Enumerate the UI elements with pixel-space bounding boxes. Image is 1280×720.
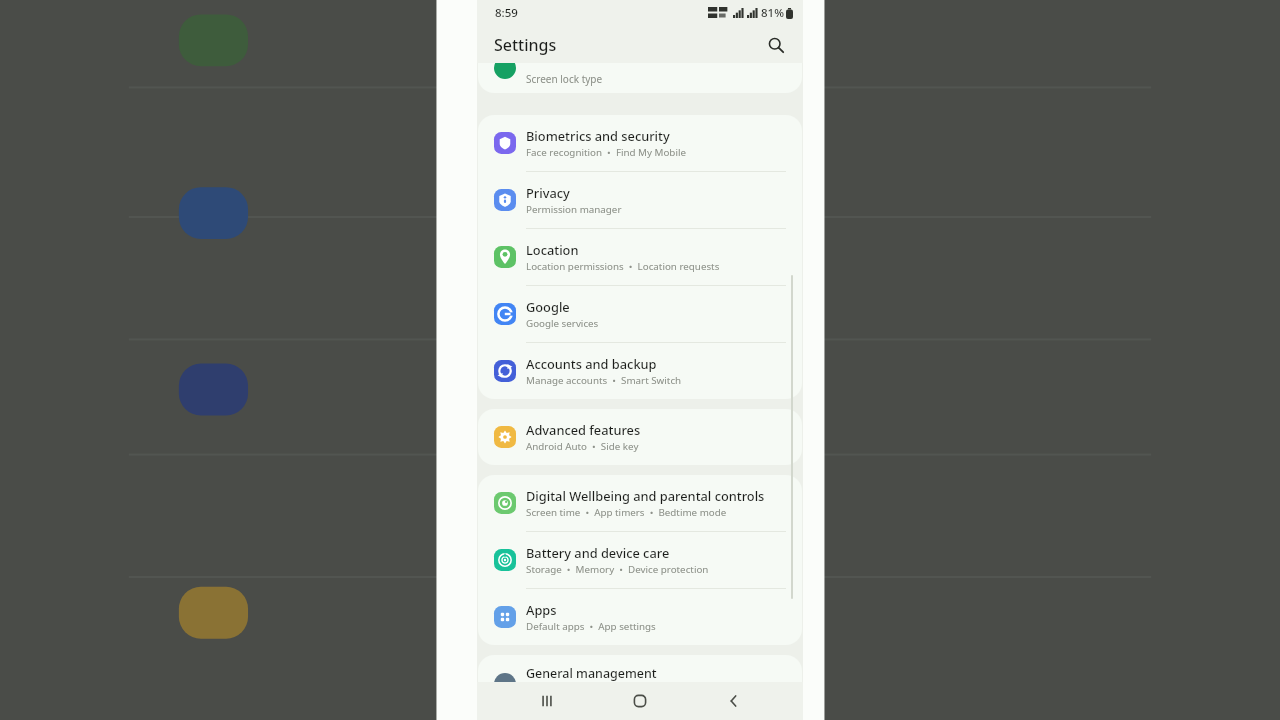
button[interactable]: Privacy xyxy=(478,172,802,228)
staticText: Advanced features xyxy=(526,421,641,438)
staticText: General management xyxy=(526,665,657,682)
staticText: Biometrics and security xyxy=(526,127,670,144)
button[interactable]: Google xyxy=(478,286,802,342)
staticText: Permission manager xyxy=(526,203,622,216)
button[interactable]: Back xyxy=(710,682,758,720)
staticText: Digital Wellbeing and parental controls xyxy=(526,487,765,504)
button[interactable]: Biometrics and security xyxy=(478,115,802,171)
staticText: Google services xyxy=(526,317,599,330)
button[interactable]: General management xyxy=(478,655,802,682)
button[interactable]: Location xyxy=(478,229,802,285)
staticText: Privacy xyxy=(526,184,570,201)
button[interactable]: Recents xyxy=(523,682,571,720)
staticText: Manage accounts • Smart Switch xyxy=(526,374,682,387)
staticText: Location xyxy=(526,241,579,258)
button[interactable]: Search xyxy=(763,32,789,58)
staticText: 8:59 xyxy=(495,5,518,21)
staticText: Screen lock type xyxy=(526,72,603,86)
button[interactable]: Accounts and backup xyxy=(478,343,802,399)
staticText: Location permissions • Location requests xyxy=(526,260,720,273)
staticText: Apps xyxy=(526,601,557,618)
button[interactable]: Advanced features xyxy=(478,409,802,465)
staticText: Accounts and backup xyxy=(526,355,657,372)
staticText: Battery and device care xyxy=(526,544,670,561)
button[interactable]: Battery and device care xyxy=(478,532,802,588)
button[interactable]: Screen lock type xyxy=(478,63,802,93)
staticText: Settings xyxy=(494,34,557,56)
staticText: Default apps • App settings xyxy=(526,620,656,633)
staticText: Screen time • App timers • Bedtime mode xyxy=(526,506,727,519)
button[interactable]: Digital Wellbeing and parental controls xyxy=(478,475,802,531)
staticText: Google xyxy=(526,298,570,315)
staticText: Android Auto • Side key xyxy=(526,440,639,453)
button[interactable]: Apps xyxy=(478,589,802,645)
staticText: 81% xyxy=(761,5,784,21)
staticText: Storage • Memory • Device protection xyxy=(526,563,709,576)
button[interactable]: Home xyxy=(616,682,664,720)
staticText: Face recognition • Find My Mobile xyxy=(526,146,686,159)
